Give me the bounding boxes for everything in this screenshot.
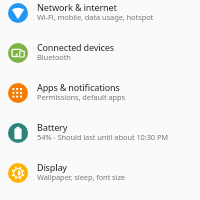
staticText: Network & internet — [37, 1, 117, 13]
button[interactable]: Battery — [0, 113, 200, 153]
staticText: Connected devices — [37, 41, 114, 53]
staticText: 54% - Should last until about 10:30 PM — [37, 132, 169, 142]
button[interactable]: Connected devices — [0, 33, 200, 73]
staticText: Bluetooth — [37, 52, 71, 62]
staticText: Permissions, default apps — [37, 92, 126, 102]
staticText: Wi-Fi, mobile, data usage, hotspot — [37, 12, 154, 22]
staticText: Display — [37, 161, 67, 173]
button[interactable]: Network & internet — [0, 0, 200, 33]
staticText: Apps & notifications — [37, 81, 120, 93]
button[interactable]: Apps & notifications — [0, 73, 200, 113]
button[interactable]: Display — [0, 153, 200, 193]
staticText: Battery — [37, 121, 68, 133]
staticText: Wallpaper, sleep, font size — [37, 172, 125, 182]
